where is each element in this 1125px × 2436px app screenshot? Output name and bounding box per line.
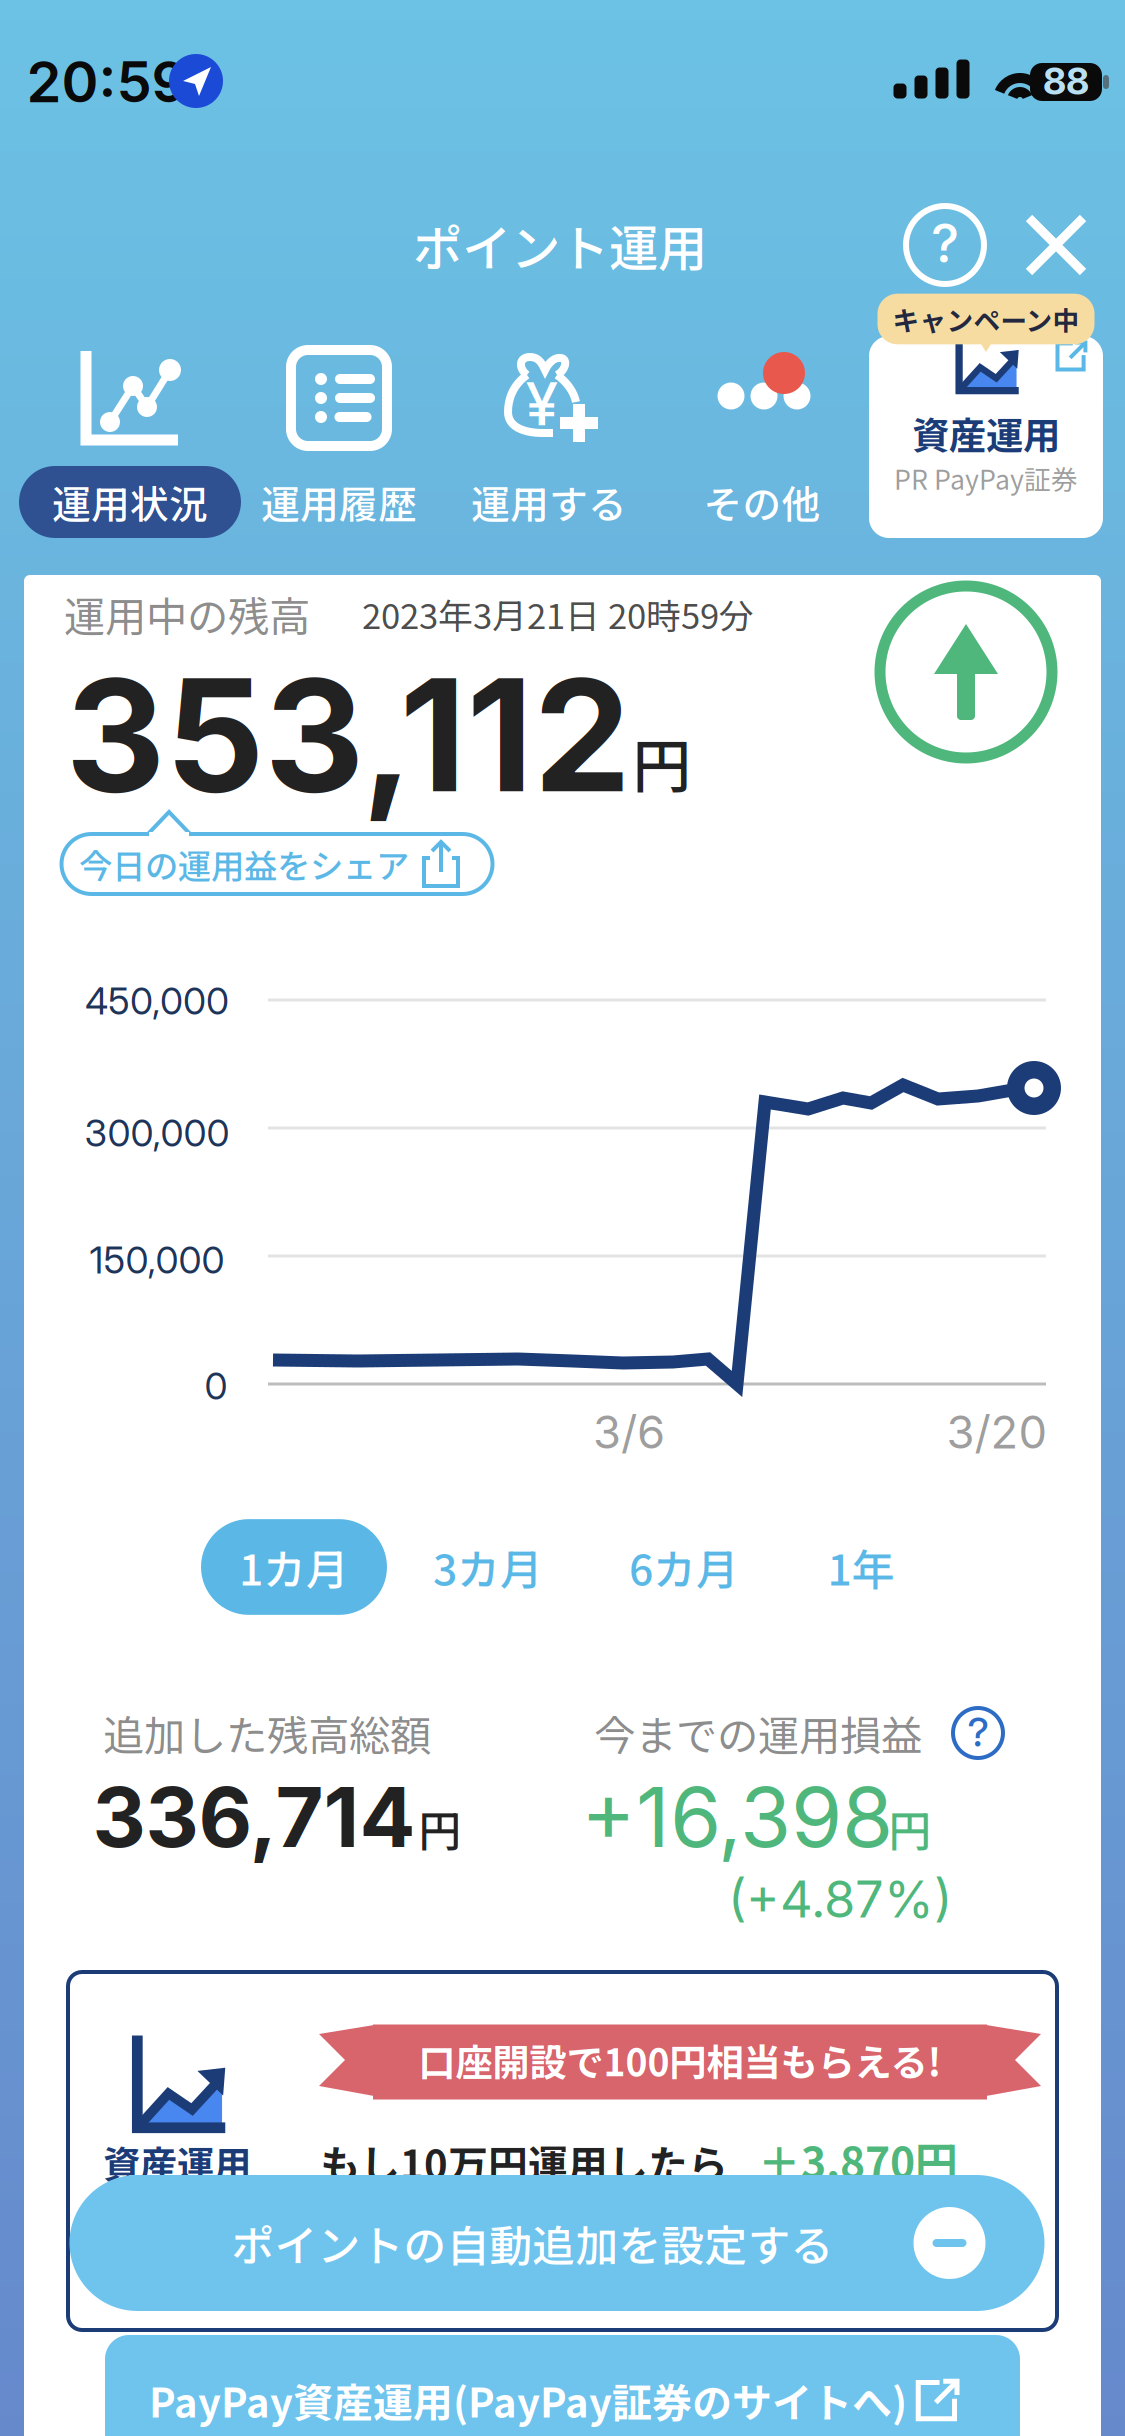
staticText: ポイントの自動追加を設定する [231, 2212, 833, 2274]
button[interactable]: 運用履歴 [233, 336, 445, 566]
staticText: 2023年3月21日 20時59分 [362, 589, 754, 639]
staticText: ＋3,870円 [758, 2129, 958, 2191]
staticText: PayPay資産運用(PayPay証券のサイトへ) [149, 2371, 907, 2429]
staticText: ¥ [525, 368, 558, 439]
staticText: 運用中の残高 [64, 584, 310, 644]
staticText: +16,398 [581, 1767, 893, 1867]
staticText: 口座開設で100円相当もらえる! [418, 2033, 941, 2087]
button[interactable]: ヘルプ [890, 190, 1000, 300]
staticText: 300,000 [84, 1110, 229, 1156]
staticText: 353,112 [65, 641, 630, 828]
button[interactable]: 3カ月 [395, 1519, 581, 1615]
staticText: キャンペーン中 [892, 300, 1079, 338]
button[interactable]: 1カ月 [201, 1519, 387, 1615]
staticText: 運用する [471, 474, 627, 530]
staticText: その他 [703, 474, 820, 530]
staticText: 円 [888, 1797, 931, 1859]
staticText: 運用状況 [52, 474, 208, 530]
staticText: 88 [1043, 58, 1089, 104]
staticText: 3カ月 [433, 1536, 543, 1598]
button[interactable]: 6カ月 [591, 1519, 777, 1615]
staticText: 円 [632, 719, 691, 804]
button[interactable]: ポイントの自動追加を設定する [69, 2175, 1044, 2311]
staticText: 20:59 [26, 48, 187, 116]
staticText: 6カ月 [629, 1536, 739, 1598]
button[interactable]: 運用状況 [24, 336, 236, 566]
staticText: もし10万円運用したら [320, 2133, 728, 2191]
staticText: ポイント運用 [413, 209, 707, 281]
staticText: 追加した残高総額 [103, 1703, 431, 1763]
staticText: ? [931, 211, 959, 275]
button[interactable]: 運用損益とは [946, 1701, 1010, 1765]
staticText: 運用履歴 [261, 474, 417, 530]
button[interactable]: 閉じる [1001, 190, 1111, 300]
staticText: 今日の運用益をシェア [79, 840, 409, 888]
button[interactable]: 資産運用 [866, 299, 1106, 549]
staticText: 450,000 [85, 978, 229, 1024]
staticText: 資産運用 [912, 406, 1060, 460]
staticText: PR PayPay証券 [894, 459, 1078, 497]
button[interactable]: PayPay資産運用(PayPay証券のサイトへ) [105, 2335, 1020, 2436]
staticText: 円 [418, 1797, 461, 1859]
button[interactable]: 今日の運用益をシェア [61, 802, 513, 898]
staticText: 3/20 [946, 1405, 1047, 1459]
button[interactable]: 1年 [789, 1519, 932, 1615]
button[interactable]: その他 [656, 336, 868, 566]
staticText: (+4.87%) [728, 1868, 952, 1930]
staticText: 0 [204, 1363, 227, 1409]
staticText: 資産運用 [103, 2135, 251, 2189]
staticText: 今までの運用損益 [594, 1703, 922, 1763]
staticText: ? [967, 1708, 988, 1756]
staticText: 336,714 [92, 1767, 415, 1867]
staticText: 150,000 [89, 1237, 224, 1283]
staticText: 1カ月 [239, 1536, 349, 1598]
staticText: 1年 [827, 1536, 894, 1598]
button[interactable]: ¥ [443, 336, 655, 566]
staticText: 3/6 [593, 1405, 665, 1459]
